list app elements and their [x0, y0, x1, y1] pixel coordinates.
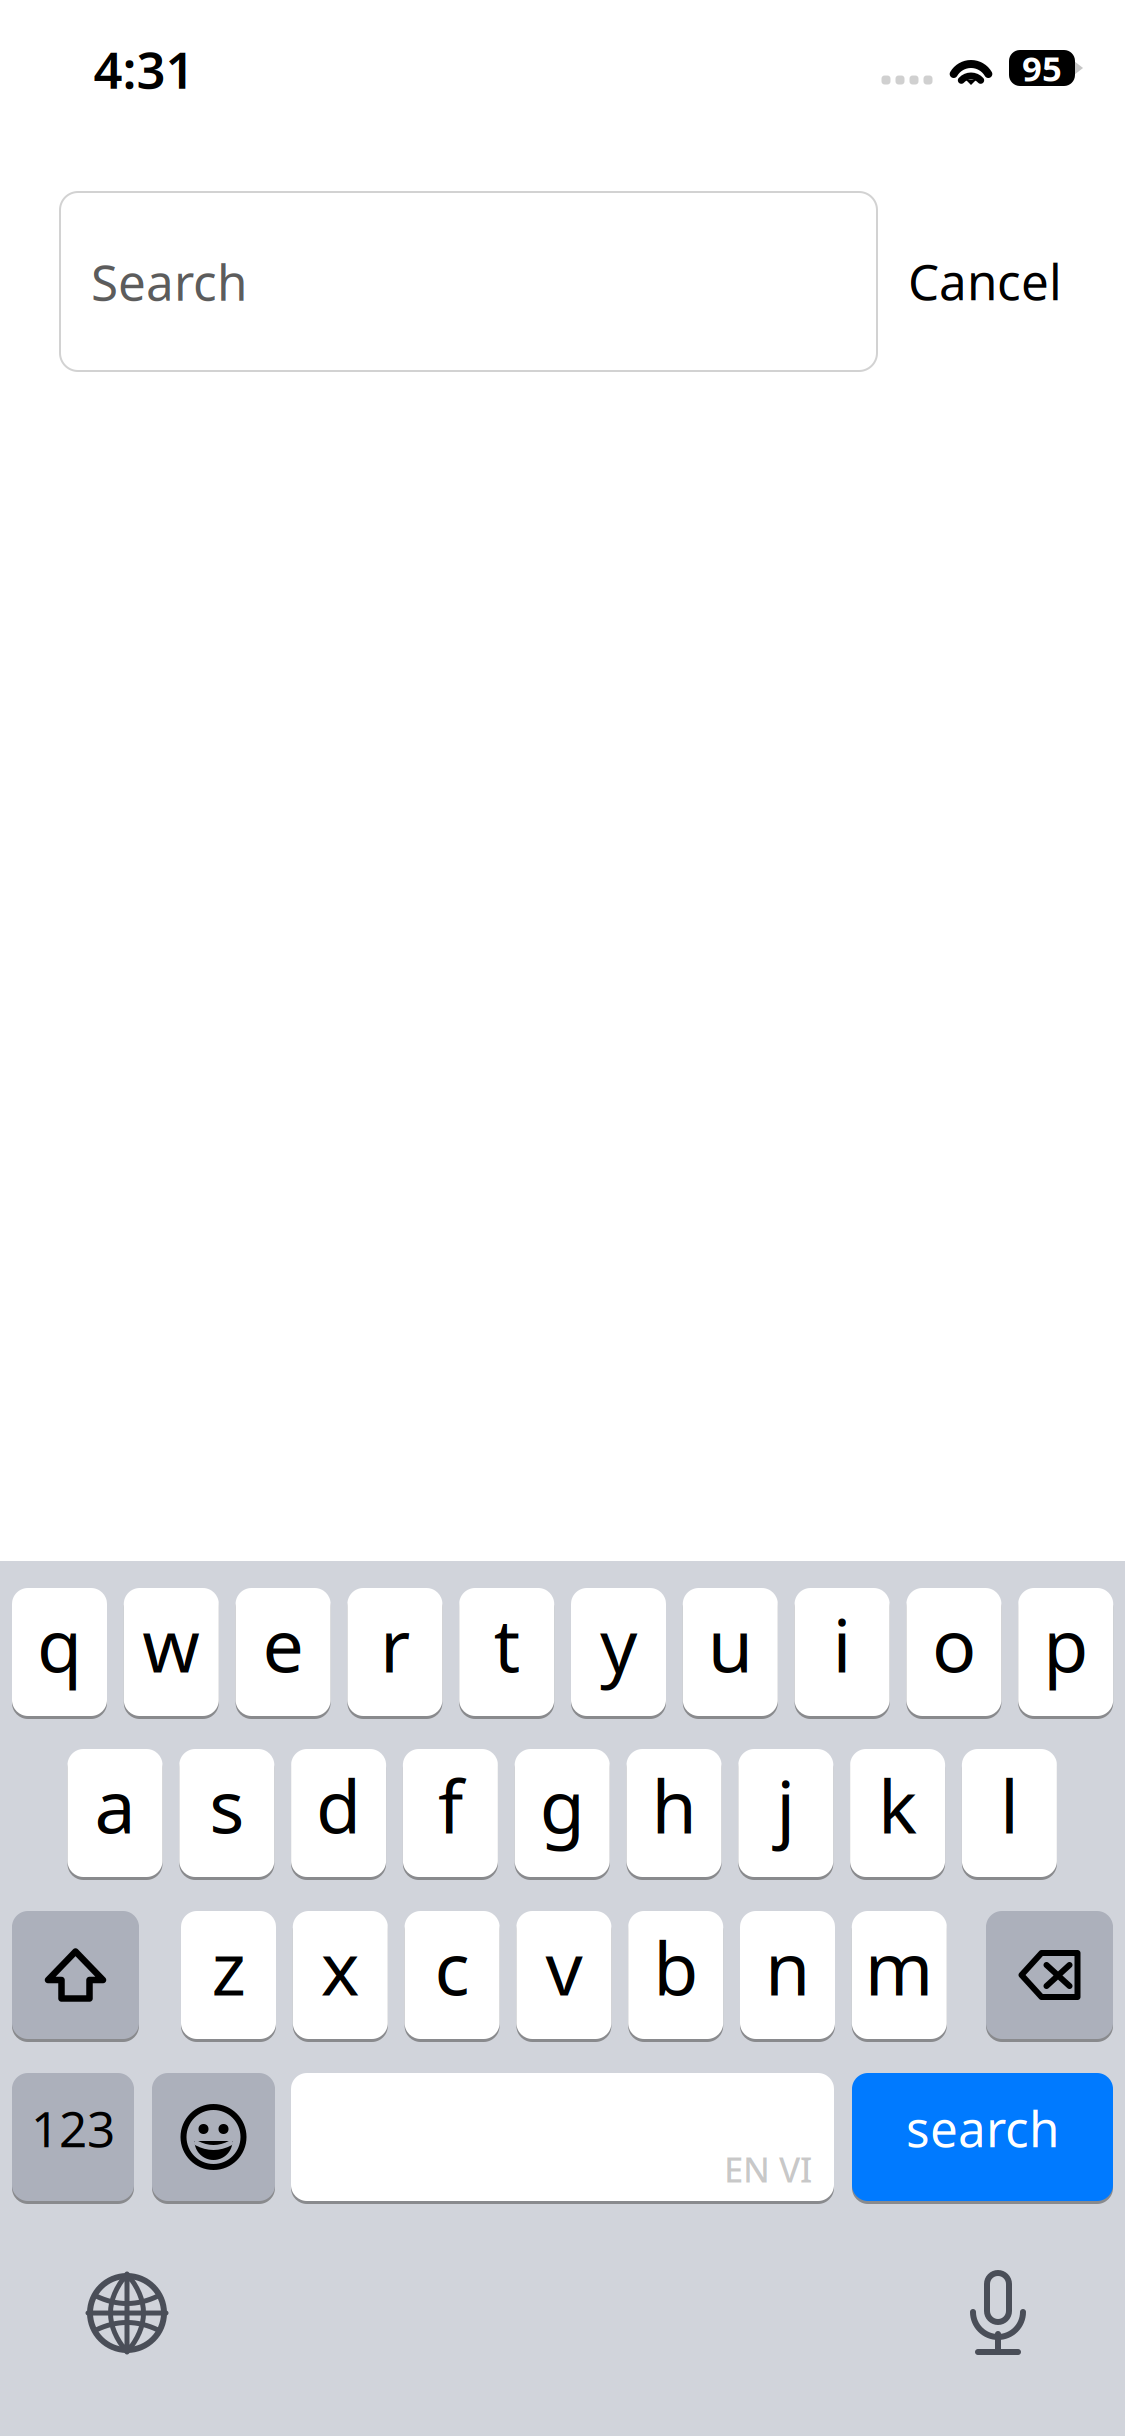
staticText: i [833, 1595, 852, 1693]
staticText: 4:31 [93, 35, 194, 103]
button[interactable]: c [405, 1908, 500, 2042]
button[interactable]: b [628, 1908, 723, 2042]
staticText: q [37, 1595, 82, 1693]
staticText: u [708, 1595, 753, 1693]
button[interactable]: z [181, 1908, 276, 2042]
staticText: l [1000, 1756, 1019, 1854]
staticText: e [263, 1595, 304, 1693]
button[interactable]: Dictation [938, 2253, 1058, 2373]
staticText: a [94, 1756, 135, 1854]
staticText: Search [91, 249, 247, 314]
button[interactable]: m [852, 1908, 947, 2042]
staticText: b [653, 1918, 698, 2016]
button[interactable]: h [626, 1746, 721, 1880]
staticText: 95 [1022, 45, 1062, 91]
staticText: h [651, 1756, 696, 1854]
button[interactable]: s [179, 1746, 274, 1880]
staticText: d [316, 1756, 361, 1854]
button[interactable]: r [347, 1585, 442, 1719]
staticText: z [211, 1918, 245, 2016]
button[interactable]: Delete [986, 1908, 1113, 2042]
button[interactable]: q [12, 1585, 107, 1719]
button[interactable]: Shift [12, 1908, 139, 2042]
button[interactable]: l [962, 1746, 1057, 1880]
button[interactable]: e [236, 1585, 331, 1719]
button[interactable]: g [515, 1746, 610, 1880]
button[interactable]: 123 [12, 2070, 134, 2204]
button[interactable]: k [850, 1746, 945, 1880]
staticText: g [540, 1756, 585, 1854]
button[interactable]: d [291, 1746, 386, 1880]
staticText: o [932, 1595, 976, 1693]
button[interactable]: Search [60, 192, 877, 371]
button[interactable]: n [740, 1908, 835, 2042]
button[interactable]: f [403, 1746, 498, 1880]
button[interactable]: p [1018, 1585, 1113, 1719]
staticText: t [494, 1595, 520, 1693]
button[interactable]: j [738, 1746, 833, 1880]
button[interactable]: o [906, 1585, 1001, 1719]
staticText: x [321, 1918, 360, 2016]
staticText: v [545, 1918, 582, 2016]
staticText: search [906, 2095, 1059, 2161]
staticText: p [1043, 1595, 1088, 1693]
staticText: k [878, 1756, 917, 1854]
staticText: w [142, 1595, 200, 1693]
staticText: Cancel [908, 248, 1062, 314]
button[interactable]: search [852, 2070, 1113, 2204]
button[interactable]: v [516, 1908, 611, 2042]
staticText: n [765, 1918, 810, 2016]
button[interactable]: y [571, 1585, 666, 1719]
button[interactable]: a [67, 1746, 162, 1880]
staticText: f [438, 1756, 463, 1854]
button[interactable]: space [291, 2070, 834, 2204]
button[interactable]: Next keyboard [67, 2253, 187, 2373]
staticText: r [380, 1595, 410, 1693]
staticText: c [435, 1918, 470, 2016]
button[interactable]: x [293, 1908, 388, 2042]
button[interactable]: w [124, 1585, 219, 1719]
staticText: s [209, 1756, 244, 1854]
button[interactable]: Emoji [152, 2070, 275, 2204]
staticText: 123 [31, 2095, 115, 2161]
button[interactable]: t [459, 1585, 554, 1719]
staticText: j [776, 1756, 795, 1854]
button[interactable]: i [795, 1585, 890, 1719]
button[interactable]: u [683, 1585, 778, 1719]
staticText: EN VI [724, 2146, 812, 2192]
staticText: y [600, 1595, 637, 1693]
staticText: m [865, 1918, 934, 2016]
button[interactable]: Cancel [870, 191, 1100, 370]
